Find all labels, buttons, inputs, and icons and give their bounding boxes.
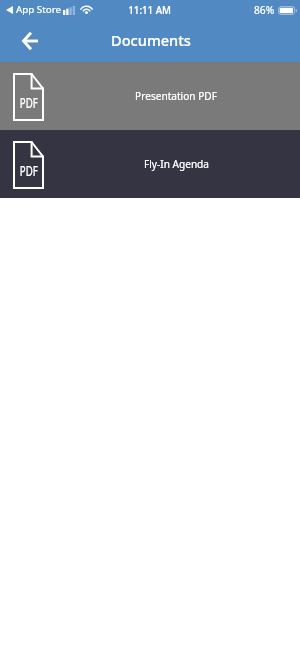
staticText: 86%	[254, 3, 275, 17]
staticText: Fly-In Agenda	[144, 157, 209, 171]
button[interactable]: PDF	[0, 130, 300, 198]
staticText: Documents	[111, 30, 191, 50]
staticText: PDF	[20, 93, 38, 112]
button[interactable]: Back	[13, 27, 41, 55]
staticText: PDF	[20, 161, 38, 180]
staticText: App Store	[16, 3, 62, 16]
staticText: Presentation PDF	[135, 89, 217, 103]
staticText: 11:11 AM	[128, 2, 172, 17]
button[interactable]: PDF	[0, 62, 300, 130]
